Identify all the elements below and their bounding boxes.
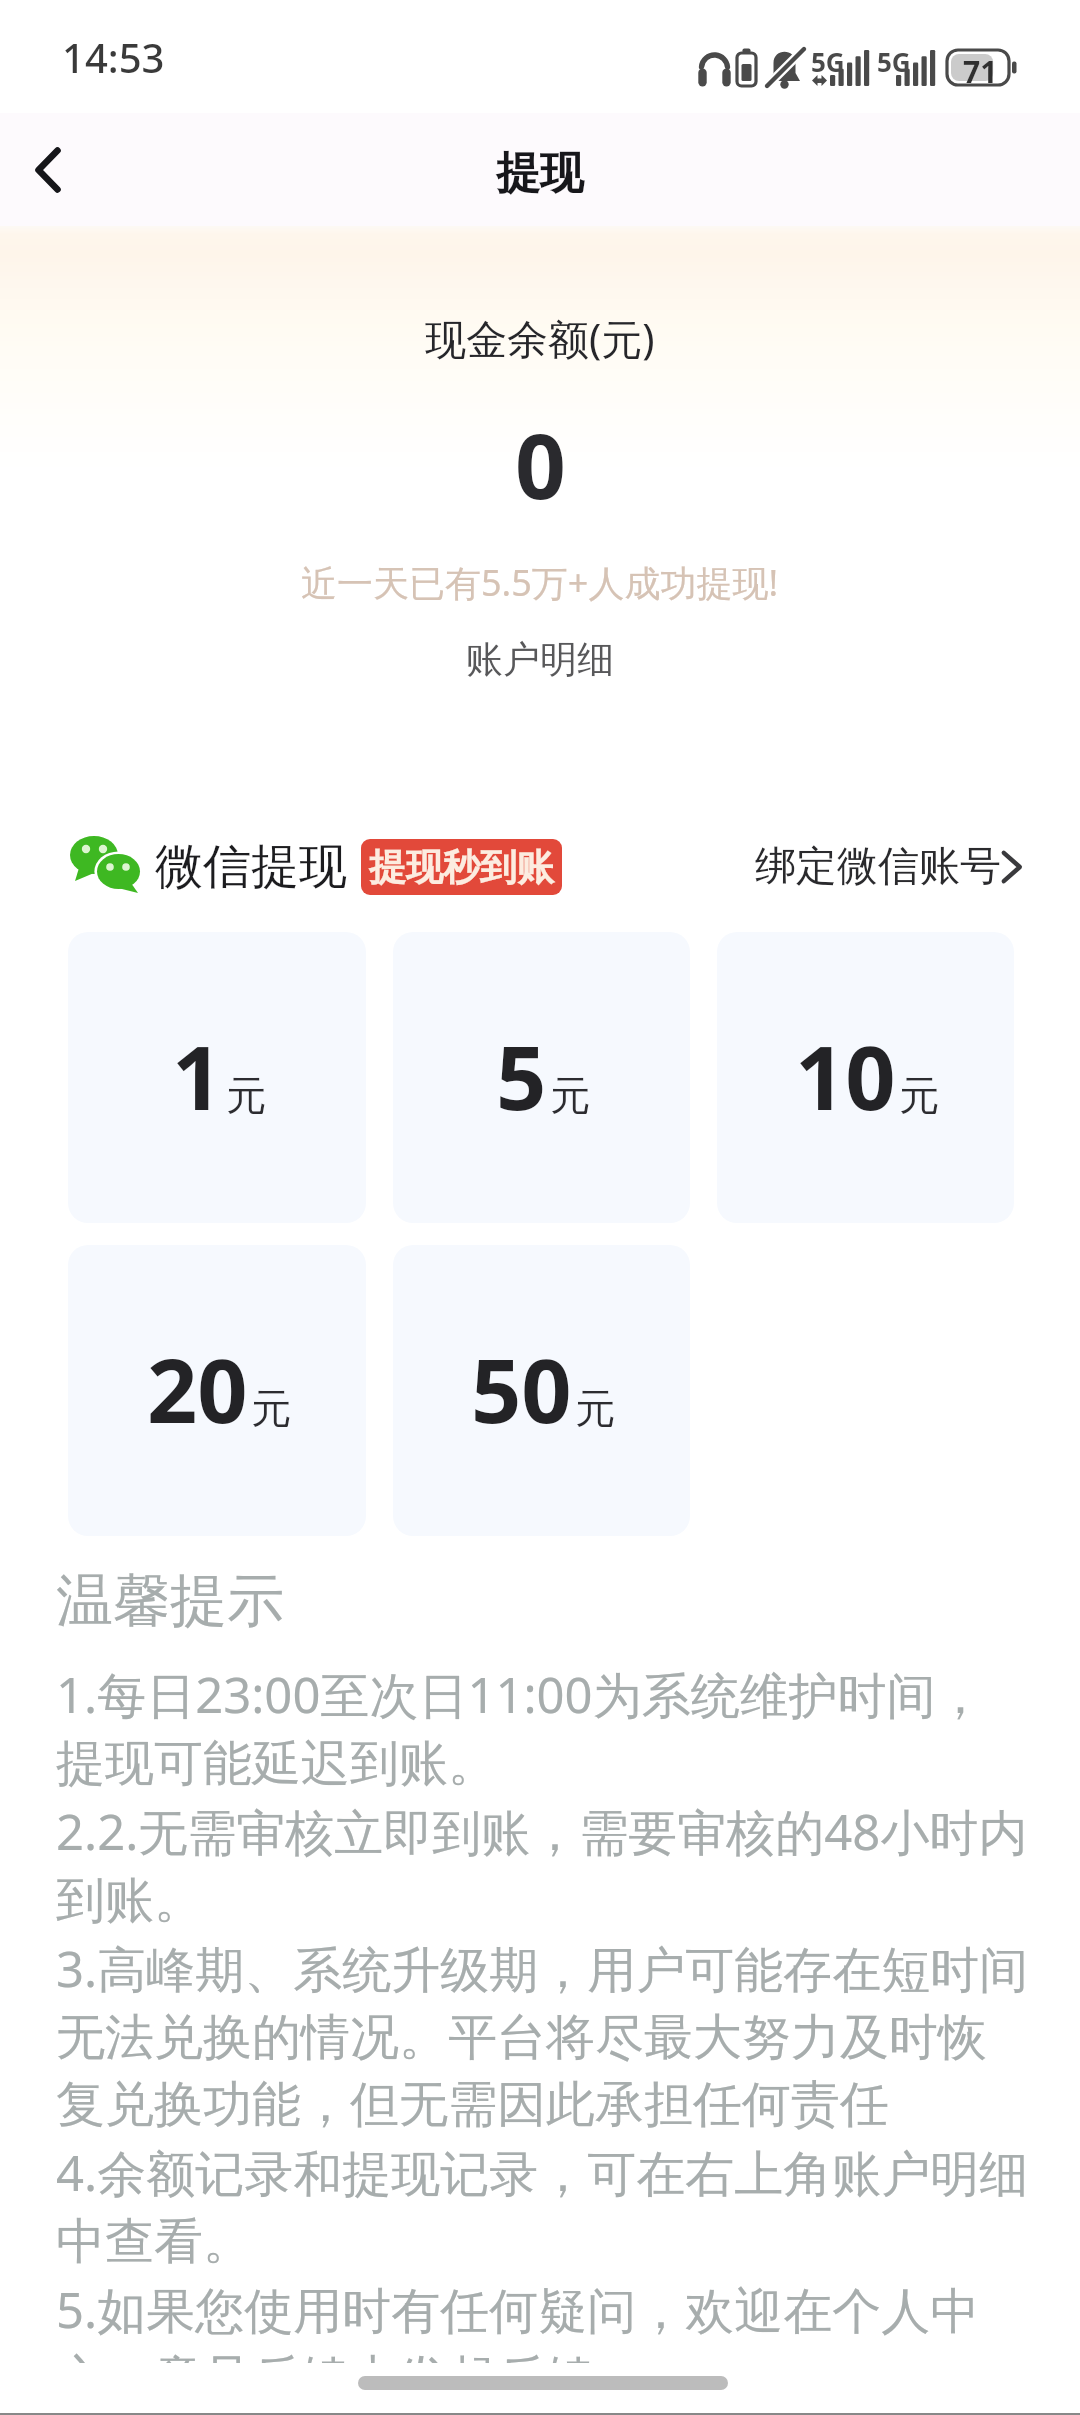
button[interactable]: 绑定微信账号 [755,841,1023,893]
staticText: 温馨提示 [56,1565,284,1637]
staticText: 5 [496,1016,547,1136]
staticText: 5G [811,44,845,79]
staticText: 元 [575,1383,615,1433]
button[interactable]: 1 [68,932,366,1223]
staticText: 1 [172,1016,223,1136]
staticText: 账户明细 [466,636,614,683]
staticText: 提现秒到账 [369,844,554,891]
button[interactable]: Back [0,113,96,226]
staticText: 元 [226,1070,266,1120]
staticText: 14:53 [62,30,165,84]
button[interactable]: 账户明细 [448,632,632,687]
staticText: 微信提现 [155,837,347,897]
button[interactable]: 10 [717,932,1014,1223]
staticText: 10 [795,1016,896,1136]
staticText: 提现 [496,146,584,201]
staticText: 1.每日23:00至次日11:00为系统维护时间， 提现可能延迟到账。 2.2.… [56,1661,1029,2410]
staticText: 现金余额(元) [425,310,655,366]
staticText: 71 [963,51,998,92]
button[interactable]: 微信提现 提现秒到账 [62,837,562,897]
button[interactable]: 50 [393,1245,690,1536]
button[interactable]: 20 [68,1245,366,1536]
staticText: 20 [147,1329,248,1449]
staticText: 元 [899,1070,939,1120]
staticText: 元 [251,1383,291,1433]
staticText: 绑定微信账号 [755,841,1001,893]
staticText: 0 [515,404,566,525]
button[interactable]: 5 [393,932,690,1223]
staticText: 5G [877,44,911,79]
staticText: 近一天已有5.5万+人成功提现! [301,558,779,607]
staticText: 元 [550,1070,590,1120]
staticText: 50 [471,1329,572,1449]
